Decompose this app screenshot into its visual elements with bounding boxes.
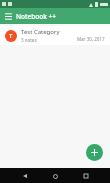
- staticText: Test Category: [21, 28, 60, 36]
- button[interactable]: Back: [19, 170, 31, 182]
- button[interactable]: Add note: [86, 144, 103, 161]
- button[interactable]: Recent apps: [80, 170, 92, 182]
- staticText: Notebook ++: [16, 12, 56, 21]
- staticText: T: [9, 32, 13, 40]
- button[interactable]: T: [0, 26, 110, 45]
- button[interactable]: Open navigation drawer: [4, 12, 13, 21]
- button[interactable]: Home: [49, 170, 61, 182]
- staticText: 3 notes: [21, 37, 37, 43]
- staticText: Mar 30, 2017: [77, 36, 105, 42]
